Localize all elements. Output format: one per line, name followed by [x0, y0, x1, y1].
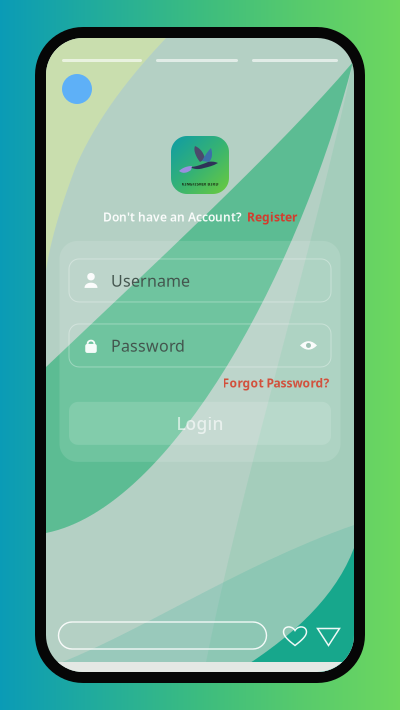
button[interactable]: Show password: [300, 339, 317, 351]
button[interactable]: Forgot Password?: [222, 375, 329, 391]
button[interactable]: Register: [247, 209, 297, 225]
staticText: KINGFISHER BIRD: [181, 181, 218, 187]
button[interactable]: Share: [315, 622, 341, 648]
staticText: Register: [247, 209, 297, 225]
staticText: Forgot Password?: [222, 375, 329, 391]
staticText: Username: [111, 270, 190, 291]
button[interactable]: Like: [281, 622, 308, 649]
staticText: Password: [111, 335, 185, 356]
staticText: Don't have an Account?: [103, 209, 242, 225]
button[interactable]: Comment: [58, 622, 266, 649]
button[interactable]: Login: [69, 402, 331, 445]
staticText: Login: [176, 412, 223, 435]
